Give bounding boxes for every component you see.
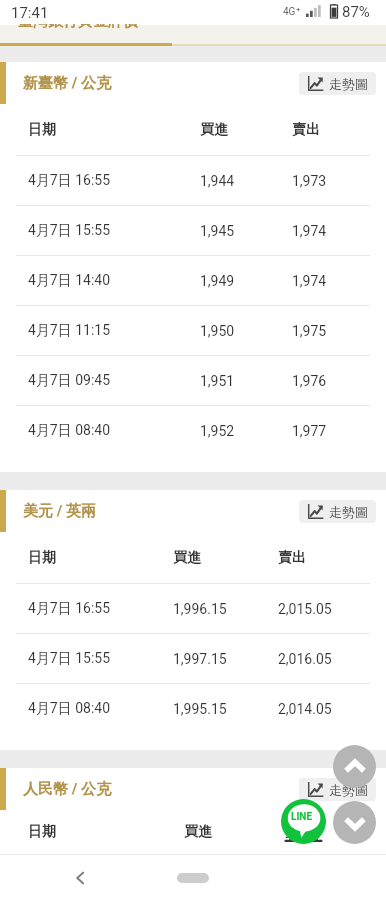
staticText: 走勢圖 [329,782,368,798]
staticText: 日期 [28,549,56,567]
staticText: 1,977 [292,423,327,439]
button[interactable]: 4月7日 15:55 [0,206,386,255]
staticText: 1,950 [200,323,235,339]
staticText: 2,015.05 [278,601,332,617]
staticText: 走勢圖 [329,504,368,520]
button[interactable]: Home [177,873,209,883]
staticText: 賣出 [292,121,320,139]
staticText: 1,952 [200,423,235,439]
staticText: 1,974 [292,273,327,289]
button[interactable]: 4月7日 11:15 [0,306,386,355]
staticText: 4月7日 11:15 [28,322,111,340]
staticText: 買進 [184,823,212,841]
staticText: 17:41 [11,4,49,22]
staticText: 1,945 [200,223,235,239]
staticText: 日期 [28,823,56,841]
staticText: 賣出 [285,823,313,841]
staticText: 4月7日 16:55 [28,600,111,618]
staticText: 美元 / 英兩 [23,502,97,521]
staticText: 4月7日 09:45 [28,372,111,390]
staticText: 買進 [200,121,228,139]
button[interactable]: 走勢圖 [299,72,376,95]
staticText: 1,951 [200,373,235,389]
staticText: 日期 [28,121,56,139]
staticText: 87% [342,3,370,21]
button[interactable]: LINE [281,799,326,844]
staticText: + [296,5,301,14]
staticText: 1,974 [292,223,327,239]
staticText: 買進 [173,549,201,567]
button[interactable]: 4月7日 14:40 [0,256,386,305]
staticText: 賣出 [278,549,306,567]
button[interactable]: Scroll to top [333,745,376,788]
staticText: 1,995.15 [173,701,227,717]
staticText: 1,976 [292,373,327,389]
button[interactable]: 4月7日 08:40 [0,406,386,455]
button[interactable]: Back [64,862,96,894]
button[interactable]: 4月7日 09:45 [0,356,386,405]
staticText: 4月7日 08:40 [28,422,111,440]
button[interactable]: 4月7日 16:55 [0,156,386,205]
button[interactable]: 4月7日 15:55 [0,634,386,683]
staticText: 人民幣 / 公克 [23,780,112,799]
button[interactable]: 走勢圖 [299,500,376,523]
staticText: 4G [283,6,296,18]
staticText: 4月7日 16:55 [28,172,111,190]
staticText: 1,973 [292,173,327,189]
staticText: 4月7日 15:55 [28,650,111,668]
staticText: 2,016.05 [278,651,332,667]
button[interactable]: 走勢圖 [299,778,376,801]
staticText: LINE [291,811,313,823]
staticText: 2,014.05 [278,701,332,717]
staticText: 1,975 [292,323,327,339]
button[interactable]: Scroll to bottom [333,801,376,844]
staticText: 走勢圖 [329,76,368,92]
staticText: 4月7日 15:55 [28,222,111,240]
button[interactable]: 4月7日 16:55 [0,584,386,633]
staticText: 1,949 [200,273,235,289]
staticText: 1,944 [200,173,235,189]
button[interactable]: 4月7日 08:40 [0,684,386,733]
staticText: 1,996.15 [173,601,227,617]
staticText: 新臺幣 / 公克 [23,74,112,93]
staticText: 4月7日 08:40 [28,700,111,718]
staticText: 1,997.15 [173,651,227,667]
staticText: 臺灣銀行黃金牌價 [18,12,138,31]
staticText: 4月7日 14:40 [28,272,111,290]
